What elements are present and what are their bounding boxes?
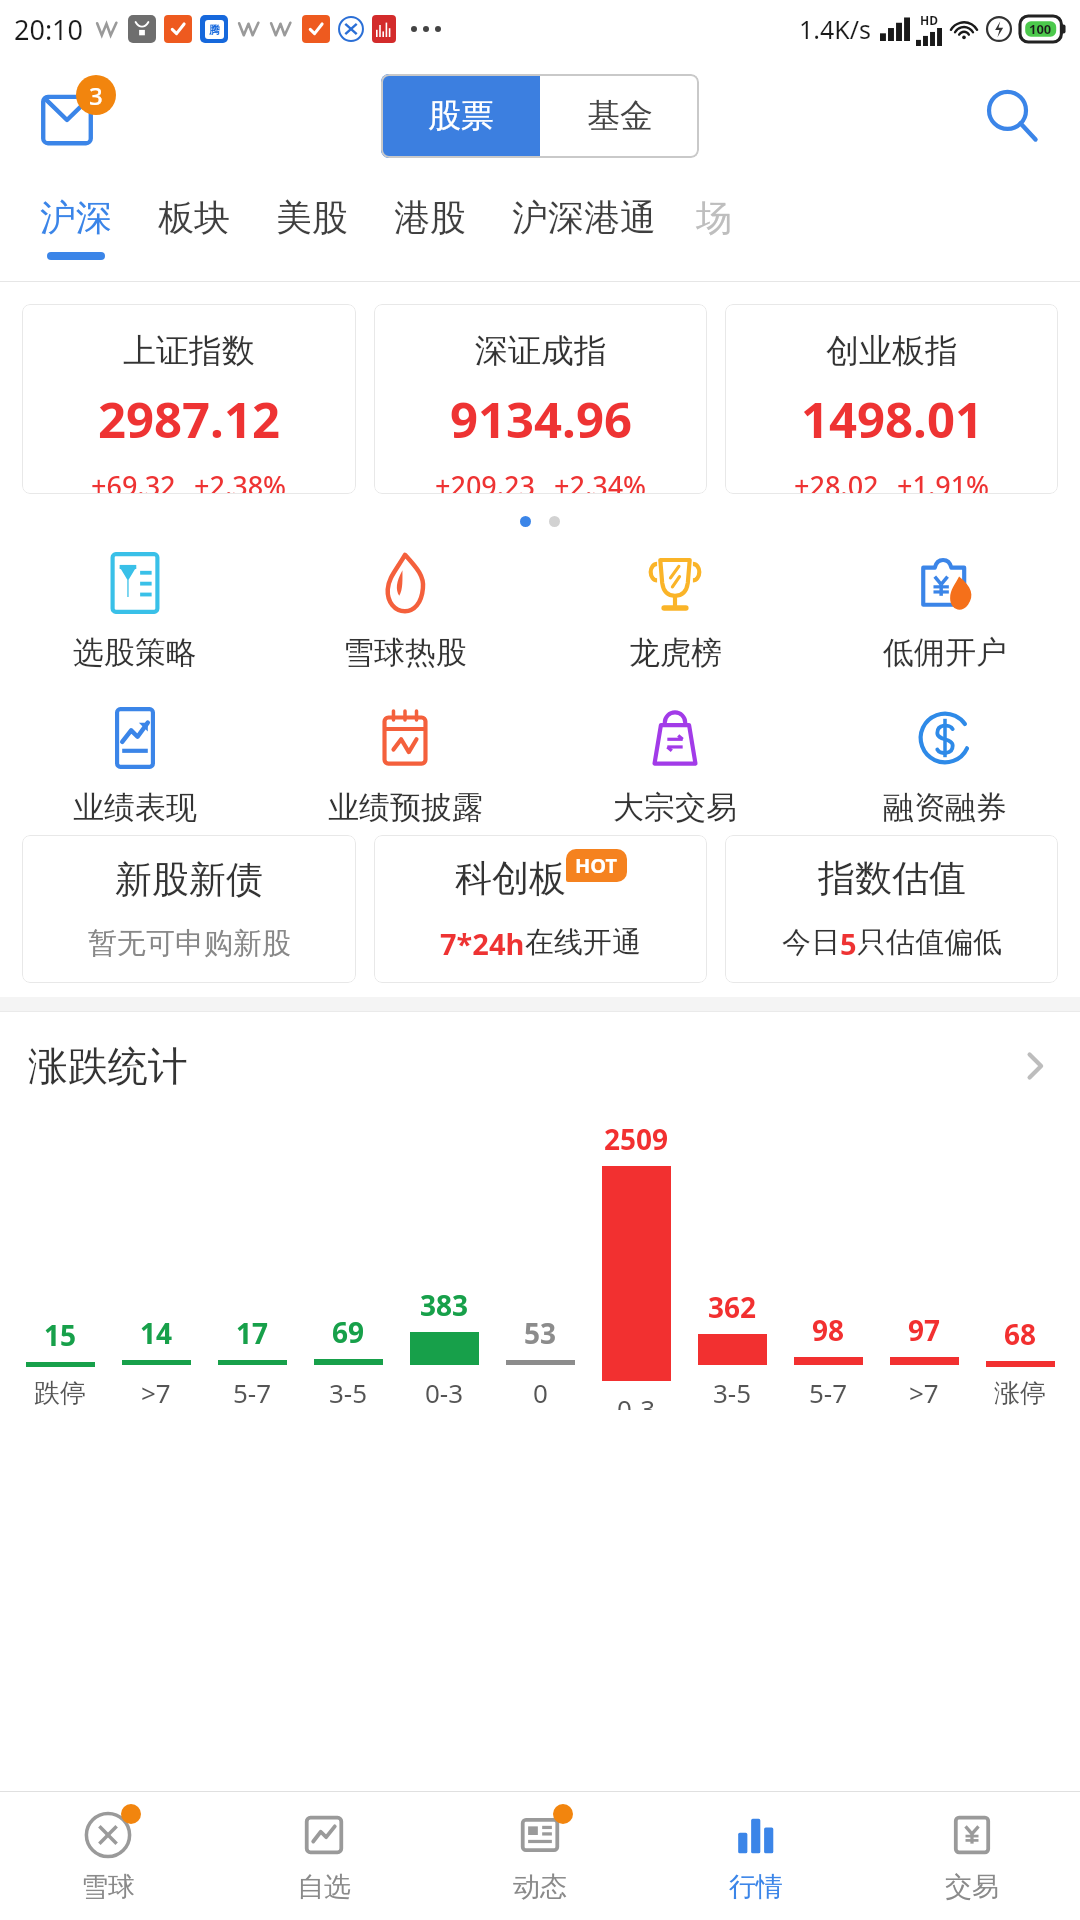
staticText: 跌停 bbox=[34, 1377, 86, 1410]
staticText: 100 bbox=[1029, 20, 1052, 38]
staticText: 3 bbox=[89, 79, 103, 112]
staticText: 3-5 bbox=[713, 1375, 752, 1410]
staticText: 1498.01 bbox=[801, 386, 983, 453]
button[interactable]: 业绩预披露 bbox=[270, 706, 540, 827]
staticText: 低佣开户 bbox=[883, 633, 1007, 672]
staticText: 今日 bbox=[782, 924, 840, 961]
staticText: >7 bbox=[909, 1375, 939, 1410]
button[interactable]: 场 bbox=[696, 173, 732, 252]
staticText: 5-7 bbox=[809, 1375, 848, 1410]
staticText: 7*24h bbox=[440, 924, 525, 963]
staticText: 新股新债 bbox=[115, 856, 263, 903]
button[interactable]: 大宗交易 bbox=[540, 706, 810, 827]
staticText: +1.91% bbox=[897, 467, 990, 494]
staticText: 上证指数 bbox=[123, 330, 255, 372]
button[interactable]: 深证成指 bbox=[374, 304, 707, 494]
staticText: 美股 bbox=[276, 195, 348, 240]
button[interactable]: 板块 bbox=[158, 173, 230, 252]
button[interactable]: 美股 bbox=[276, 173, 348, 252]
staticText: 港股 bbox=[394, 195, 466, 240]
staticText: 383 bbox=[420, 1286, 469, 1324]
staticText: 雪球 bbox=[81, 1870, 135, 1904]
staticText: 雪球热股 bbox=[343, 633, 467, 672]
staticText: 板块 bbox=[158, 195, 230, 240]
staticText: 0-3 bbox=[425, 1375, 464, 1410]
staticText: +69.32 bbox=[91, 467, 176, 494]
staticText: 15 bbox=[44, 1316, 77, 1354]
button[interactable]: 选股策略 bbox=[0, 551, 270, 672]
staticText: 98 bbox=[812, 1311, 845, 1349]
staticText: +209.23 bbox=[435, 467, 536, 494]
staticText: 在线开通 bbox=[525, 924, 641, 961]
button[interactable]: 沪深港通 bbox=[512, 173, 656, 252]
staticText: 沪深 bbox=[40, 195, 112, 240]
staticText: 融资融券 bbox=[883, 788, 1007, 827]
staticText: 业绩表现 bbox=[73, 788, 197, 827]
staticText: 创业板指 bbox=[826, 330, 958, 372]
staticText: 选股策略 bbox=[73, 633, 197, 672]
button[interactable]: 雪球 bbox=[0, 1792, 216, 1920]
button[interactable]: 低佣开户 bbox=[810, 551, 1080, 672]
staticText: 交易 bbox=[945, 1870, 999, 1904]
staticText: >7 bbox=[141, 1375, 171, 1410]
staticText: 指数估值 bbox=[818, 855, 966, 902]
staticText: 场 bbox=[696, 195, 732, 240]
button[interactable]: 涨跌统计 bbox=[0, 1012, 1080, 1120]
staticText: 14 bbox=[140, 1314, 173, 1352]
staticText: +28.02 bbox=[794, 467, 879, 494]
button[interactable]: Search bbox=[972, 76, 1052, 156]
staticText: 20:10 bbox=[14, 11, 84, 48]
staticText: 基金 bbox=[587, 95, 653, 137]
staticText: 自选 bbox=[297, 1870, 351, 1904]
staticText: 3-5 bbox=[329, 1375, 368, 1410]
staticText: +2.38% bbox=[194, 467, 287, 494]
staticText: 沪深港通 bbox=[512, 195, 656, 240]
staticText: 17 bbox=[236, 1314, 269, 1352]
button[interactable]: 雪球热股 bbox=[270, 551, 540, 672]
staticText: 53 bbox=[524, 1314, 557, 1352]
button[interactable]: 业绩表现 bbox=[0, 706, 270, 827]
button[interactable]: 创业板指 bbox=[725, 304, 1058, 494]
staticText: 只估值偏低 bbox=[857, 924, 1002, 961]
staticText: 腾 bbox=[209, 23, 220, 37]
staticText: 2987.12 bbox=[98, 386, 280, 453]
button[interactable]: 行情 bbox=[648, 1792, 864, 1920]
button[interactable]: 动态 bbox=[432, 1792, 648, 1920]
staticText: 9134.96 bbox=[450, 386, 632, 453]
staticText: 动态 bbox=[513, 1870, 567, 1904]
button[interactable]: 龙虎榜 bbox=[540, 551, 810, 672]
button[interactable]: 股票 bbox=[381, 74, 540, 158]
button[interactable]: 融资融券 bbox=[810, 706, 1080, 827]
staticText: HOT bbox=[575, 852, 618, 879]
staticText: 2509 bbox=[604, 1120, 669, 1158]
staticText: +2.34% bbox=[554, 467, 647, 494]
staticText: HD bbox=[920, 12, 938, 28]
staticText: 0-3 bbox=[617, 1391, 656, 1410]
staticText: 68 bbox=[1004, 1315, 1037, 1353]
button[interactable]: 新股新债 bbox=[22, 835, 356, 983]
button[interactable]: Messages bbox=[28, 73, 114, 159]
staticText: 69 bbox=[332, 1313, 365, 1351]
staticText: 362 bbox=[708, 1288, 757, 1326]
button[interactable]: 科创板 bbox=[374, 835, 707, 983]
button[interactable]: 基金 bbox=[540, 74, 699, 158]
staticText: 股票 bbox=[428, 95, 494, 137]
button[interactable]: 指数估值 bbox=[725, 835, 1058, 983]
staticText: 业绩预披露 bbox=[328, 788, 483, 827]
staticText: 涨跌统计 bbox=[28, 1041, 188, 1091]
button[interactable]: 交易 bbox=[864, 1792, 1080, 1920]
button[interactable]: 上证指数 bbox=[22, 304, 356, 494]
staticText: 深证成指 bbox=[475, 330, 607, 372]
staticText: 暂无可申购新股 bbox=[88, 925, 291, 962]
staticText: 大宗交易 bbox=[613, 788, 737, 827]
button[interactable]: 沪深 bbox=[40, 173, 112, 260]
button[interactable]: 自选 bbox=[216, 1792, 432, 1920]
staticText: 5 bbox=[840, 924, 857, 963]
staticText: 科创板 bbox=[455, 855, 566, 902]
staticText: 97 bbox=[908, 1311, 941, 1349]
button[interactable]: 港股 bbox=[394, 173, 466, 252]
staticText: 5-7 bbox=[233, 1375, 272, 1410]
staticText: 龙虎榜 bbox=[629, 633, 722, 672]
staticText: 行情 bbox=[729, 1870, 783, 1904]
staticText: 1.4K/s bbox=[799, 12, 872, 46]
